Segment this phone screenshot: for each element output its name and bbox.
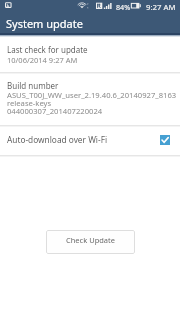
staticText: ASUS_T00J_WW_user_2.19.40.6_20140927_816… [7,90,177,116]
staticText: Check Update [66,235,116,245]
button[interactable]: Build number [0,74,180,124]
button[interactable]: Last check for update [0,36,180,73]
staticText: 9:27 AM [146,2,176,13]
staticText: 10/06/2014 9:27 AM [7,55,78,65]
button[interactable]: Check Update [46,230,135,254]
staticText: System update [6,16,83,31]
staticText: 84% [116,2,131,12]
other: Auto-download over Wi-Fi [160,135,170,145]
staticText: Last check for update [7,44,88,55]
button[interactable]: Auto-download over Wi-Fi [0,125,180,154]
staticText: Build number [7,80,59,91]
staticText: Auto-download over Wi-Fi [7,134,108,145]
